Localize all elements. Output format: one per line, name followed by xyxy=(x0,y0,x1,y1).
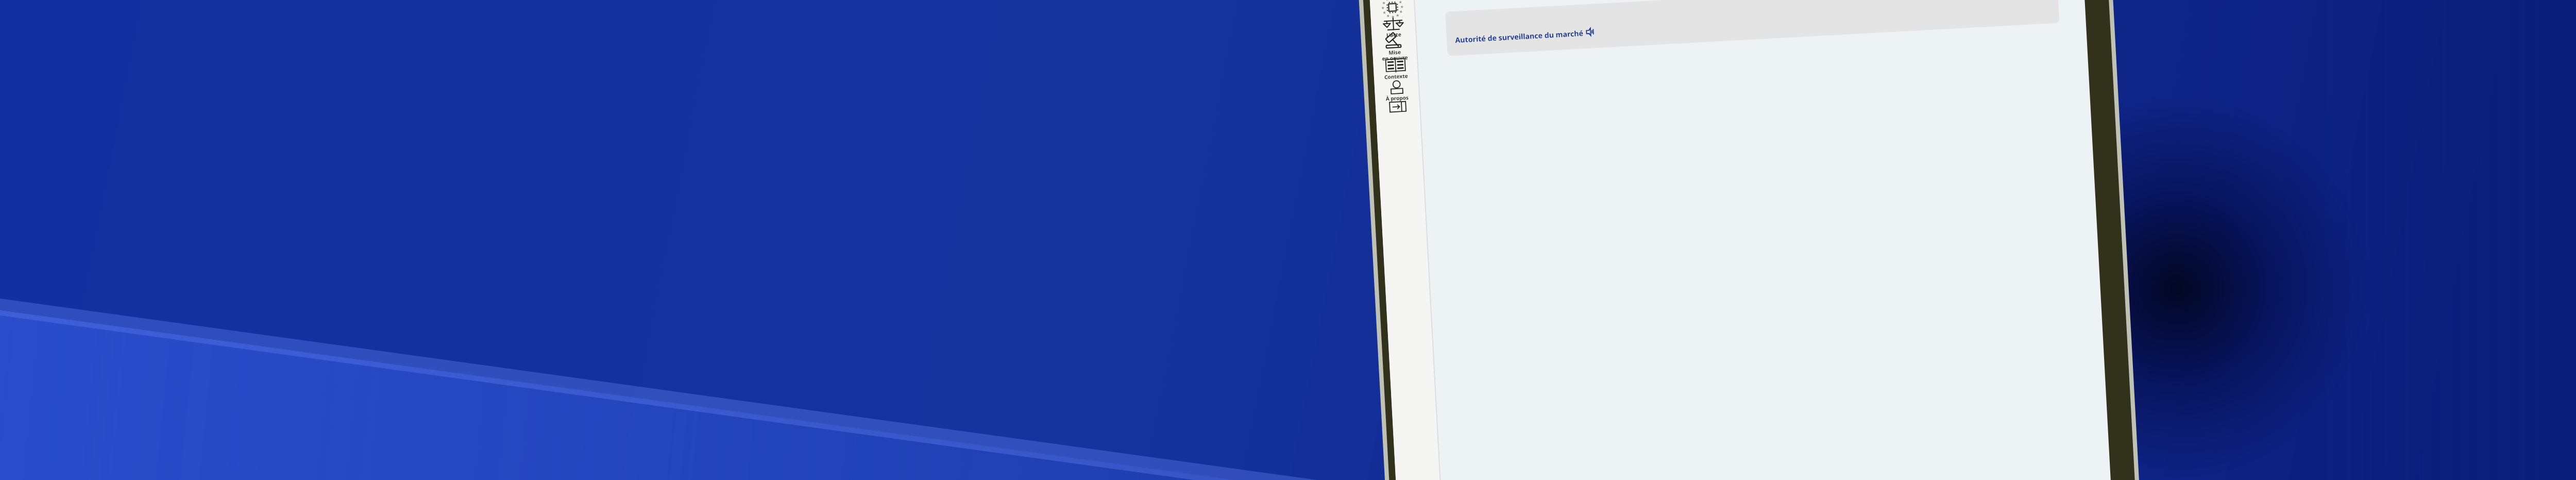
button[interactable]: Autorité nationale compétente xyxy=(1620,89,2182,110)
button[interactable]: EU AI Act home xyxy=(1512,10,1558,41)
button[interactable]: Autorité notifiante xyxy=(1620,107,2182,129)
button[interactable]: Lettres A à T xyxy=(1623,41,2205,72)
button[interactable]: L'acte xyxy=(1512,41,1558,77)
button[interactable]: Que cherchez-vous ? xyxy=(1623,20,2205,45)
button[interactable]: Autorité de surveillance du marché xyxy=(1620,126,2182,147)
button[interactable]: Lettres U à Z xyxy=(1623,56,2205,76)
